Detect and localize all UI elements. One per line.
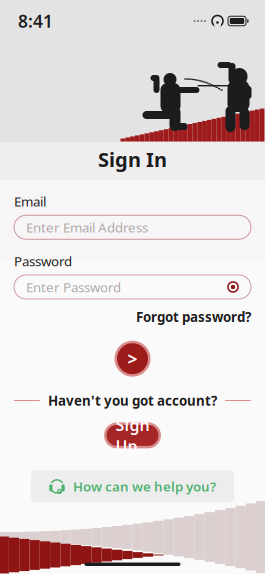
staticText: Sign In — [98, 146, 167, 173]
staticText: How can we help you? — [73, 477, 216, 495]
staticText: Haven't you got account? — [48, 392, 217, 409]
button[interactable]: How can we help you? — [31, 470, 234, 502]
button[interactable]: Forgot password? — [136, 308, 251, 326]
button[interactable]: Enter Password — [14, 275, 251, 299]
button[interactable]: Sign In — [113, 340, 151, 378]
staticText: > — [127, 347, 137, 370]
staticText: 8:41 — [18, 9, 53, 32]
button[interactable]: Enter Email Address — [14, 215, 251, 239]
button[interactable]: Sign Up — [104, 422, 161, 448]
staticText: Email — [14, 193, 46, 210]
staticText: Sign Up — [115, 414, 149, 457]
staticText: Password — [14, 252, 72, 270]
staticText: Forgot password? — [136, 308, 251, 326]
staticText: Enter Email Address — [26, 218, 148, 236]
staticText: Enter Password — [26, 278, 121, 296]
